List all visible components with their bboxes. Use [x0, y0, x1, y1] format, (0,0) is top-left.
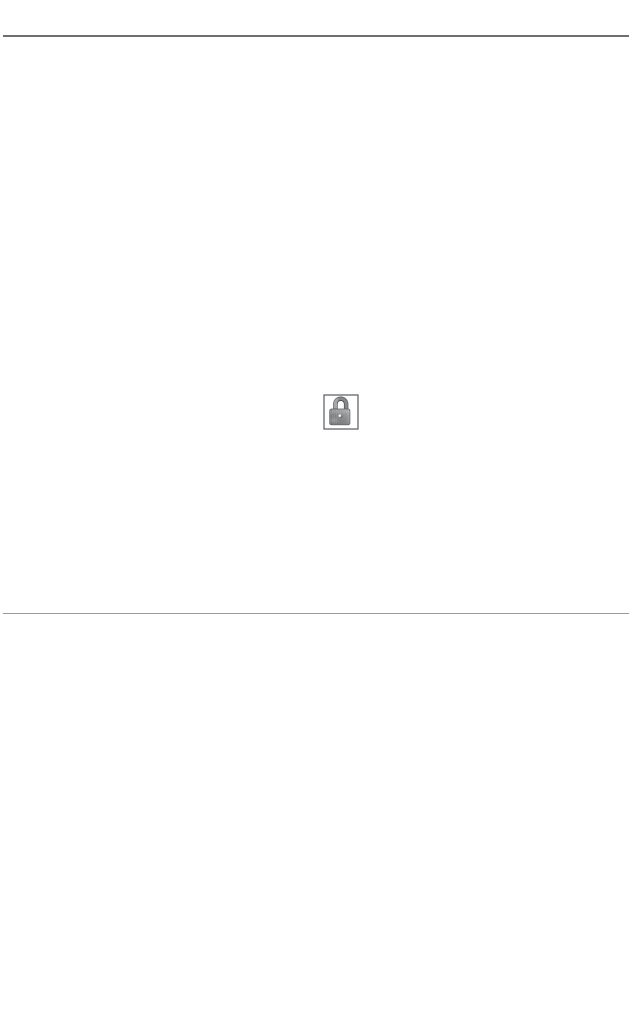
button[interactable]: Blocked secure image [324, 395, 358, 429]
